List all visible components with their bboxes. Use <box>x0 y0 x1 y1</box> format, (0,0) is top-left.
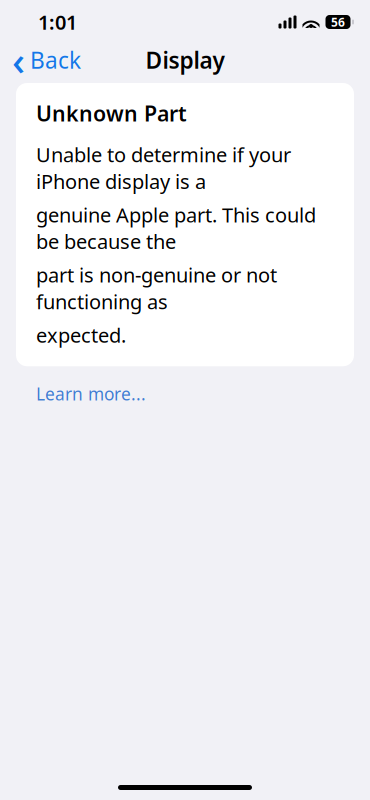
staticText: expected. <box>36 322 126 348</box>
staticText: 56 <box>331 14 345 30</box>
staticText: Learn more... <box>36 382 146 405</box>
staticText: genuine Apple part. This could be becaus… <box>36 201 316 254</box>
button[interactable]: Learn more... <box>36 377 152 410</box>
button[interactable]: ‹ <box>4 29 89 90</box>
staticText: 1:01 <box>38 9 77 35</box>
staticText: Unknown Part <box>36 99 187 127</box>
staticText: Display <box>145 45 224 75</box>
staticText: ‹ <box>12 33 25 86</box>
staticText: part is non-genuine or not functioning a… <box>36 262 277 315</box>
staticText: Back <box>30 45 81 75</box>
staticText: Unable to determine if your iPhone displ… <box>36 141 291 194</box>
